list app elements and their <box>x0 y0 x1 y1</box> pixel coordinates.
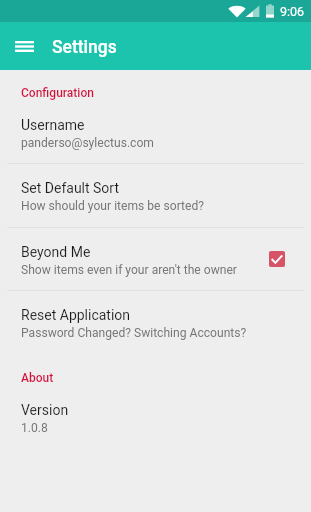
staticText: How should your items be sorted? <box>21 199 204 213</box>
staticText: Reset Application <box>21 307 131 323</box>
button[interactable]: Username <box>0 102 311 164</box>
button[interactable]: Version <box>0 387 311 449</box>
staticText: Configuration <box>21 86 94 100</box>
staticText: About <box>21 371 54 385</box>
button[interactable]: Open navigation drawer <box>5 22 43 70</box>
staticText: Show items even if your aren't the owner <box>21 263 237 277</box>
button[interactable]: Set Default Sort <box>0 165 311 228</box>
button[interactable]: Beyond Me <box>0 229 311 291</box>
staticText: panderso@sylectus.com <box>21 136 154 150</box>
staticText: 9:06 <box>280 4 305 19</box>
staticText: Password Changed? Switching Accounts? <box>21 326 247 340</box>
staticText: Username <box>21 117 85 133</box>
staticText: 1.0.8 <box>21 421 48 435</box>
staticText: Set Default Sort <box>21 180 120 196</box>
button[interactable]: Reset Application <box>0 292 311 354</box>
staticText: Beyond Me <box>21 244 91 260</box>
staticText: Settings <box>52 37 117 58</box>
staticText: Version <box>21 402 69 418</box>
button[interactable]: Beyond Me checkbox <box>269 251 285 267</box>
